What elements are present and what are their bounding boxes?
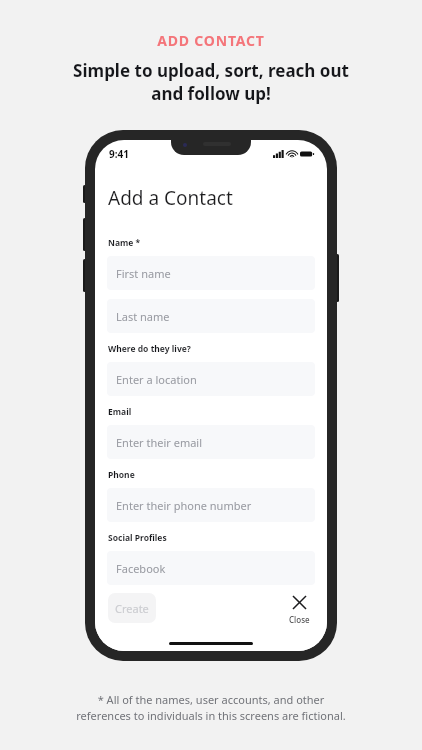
staticText: Last name bbox=[116, 309, 170, 324]
staticText: ADD CONTACT bbox=[157, 31, 265, 50]
button[interactable]: Enter a location bbox=[107, 362, 315, 396]
staticText: Add a Contact bbox=[108, 185, 233, 211]
button[interactable]: Instagram bbox=[107, 594, 315, 628]
staticText: Enter their email bbox=[116, 435, 203, 450]
staticText: 9:41 bbox=[109, 147, 129, 161]
button[interactable]: Close bbox=[285, 593, 314, 627]
staticText: * All of the names, user accounts, and o… bbox=[76, 692, 346, 723]
button[interactable]: Enter their email bbox=[107, 425, 315, 459]
staticText: Instagram bbox=[116, 604, 170, 619]
staticText: Enter a location bbox=[116, 372, 197, 387]
staticText: Close bbox=[289, 614, 310, 625]
button[interactable]: Enter their phone number bbox=[107, 488, 315, 522]
button[interactable]: First name bbox=[107, 256, 315, 290]
staticText: Email bbox=[108, 406, 132, 418]
staticText: First name bbox=[116, 266, 171, 281]
button[interactable]: Create bbox=[108, 593, 156, 623]
button[interactable]: Last name bbox=[107, 299, 315, 333]
staticText: Create bbox=[115, 601, 149, 616]
staticText: Where do they live? bbox=[108, 343, 191, 355]
staticText: Phone bbox=[108, 469, 135, 481]
staticText: Social Profiles bbox=[108, 532, 167, 544]
staticText: Facebook bbox=[116, 561, 166, 576]
staticText: Enter their phone number bbox=[116, 498, 252, 513]
staticText: Name * bbox=[108, 237, 141, 249]
staticText: Simple to upload, sort, reach out and fo… bbox=[73, 59, 349, 105]
button[interactable]: Facebook bbox=[107, 551, 315, 585]
